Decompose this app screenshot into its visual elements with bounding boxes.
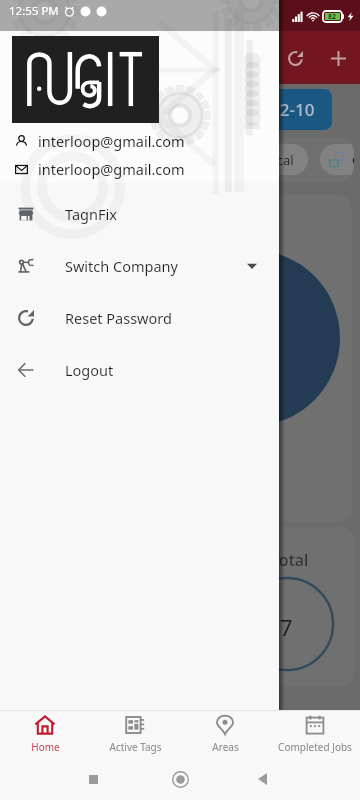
staticText: Reset Password	[65, 308, 172, 328]
staticText: 12:55 PM	[9, 3, 59, 19]
staticText: Home	[31, 740, 60, 754]
button[interactable]: Refresh	[273, 36, 317, 80]
button[interactable]: Add	[316, 36, 360, 80]
button[interactable]: Home	[160, 759, 200, 799]
staticText: TagnFix	[65, 204, 117, 224]
button[interactable]: Switch Company	[0, 240, 279, 292]
staticText: Logout	[65, 360, 114, 380]
staticText: Local	[262, 151, 294, 169]
button[interactable]: Areas	[180, 711, 270, 757]
staticText: interloop@gmail.com	[38, 159, 185, 179]
staticText: 02-10	[270, 98, 315, 121]
staticText: interloop@gmail.com	[38, 131, 185, 151]
button[interactable]: Logout	[0, 344, 279, 396]
staticText: Completed Jobs	[278, 740, 352, 754]
button[interactable]: Recents	[73, 759, 113, 799]
button[interactable]: TagnFix	[0, 188, 279, 240]
staticText: 82	[328, 12, 337, 22]
button[interactable]: Active Tags	[90, 711, 180, 757]
staticText: Active Tags	[109, 740, 162, 754]
button[interactable]: Home	[0, 711, 90, 757]
staticText: Areas	[212, 740, 239, 754]
staticText: 7	[280, 612, 293, 642]
button[interactable]: Completed Jobs	[270, 711, 360, 757]
button[interactable]: Reset Password	[0, 292, 279, 344]
button[interactable]: Back	[242, 759, 282, 799]
staticText: Co	[352, 151, 354, 169]
staticText: Total	[271, 549, 309, 571]
staticText: Switch Company	[65, 256, 178, 276]
